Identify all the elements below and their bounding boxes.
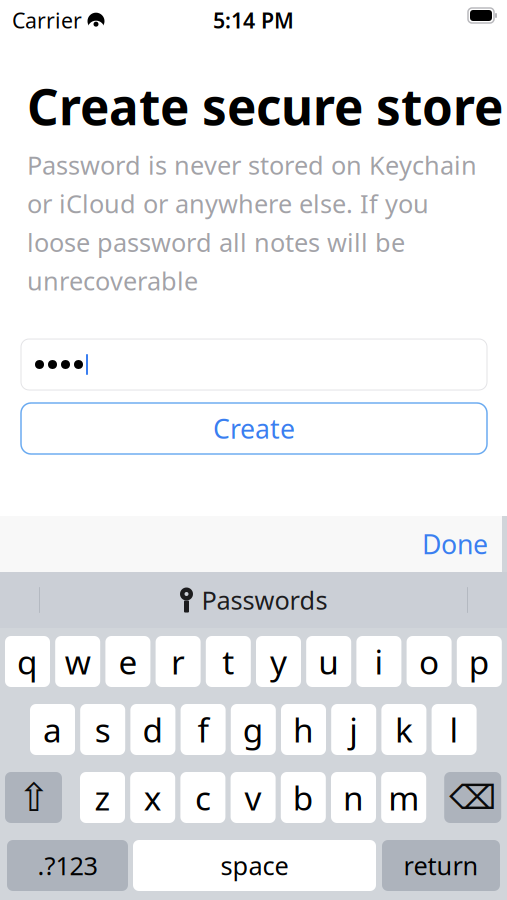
- button[interactable]: j: [331, 704, 376, 755]
- button[interactable]: h: [281, 704, 326, 755]
- button[interactable]: e: [105, 636, 150, 687]
- staticText: q: [17, 639, 38, 684]
- staticText: 5:14 PM: [213, 6, 294, 34]
- staticText: Passwords: [201, 583, 327, 617]
- staticText: Password is never stored on Keychain or …: [27, 148, 477, 298]
- button[interactable]: t: [206, 636, 251, 687]
- button[interactable]: k: [381, 704, 426, 755]
- button[interactable]: y: [256, 636, 301, 687]
- button[interactable]: x: [130, 772, 175, 823]
- button[interactable]: q: [5, 636, 50, 687]
- button[interactable]: i: [356, 636, 401, 687]
- staticText: w: [65, 639, 91, 684]
- button[interactable]: c: [180, 772, 225, 823]
- button[interactable]: .?123: [7, 840, 128, 891]
- button[interactable]: Done: [408, 514, 502, 574]
- staticText: k: [395, 707, 413, 752]
- button[interactable]: space: [133, 840, 376, 891]
- staticText: z: [94, 775, 110, 820]
- staticText: ⌫: [449, 779, 496, 816]
- staticText: ⇧: [17, 776, 49, 819]
- staticText: m: [388, 775, 419, 820]
- button[interactable]: Passwords: [169, 577, 337, 623]
- staticText: y: [270, 639, 287, 684]
- button[interactable]: z: [80, 772, 125, 823]
- staticText: n: [343, 775, 364, 820]
- staticText: Carrier: [12, 6, 82, 34]
- staticText: p: [469, 639, 490, 684]
- button[interactable]: p: [457, 636, 502, 687]
- button[interactable]: d: [130, 704, 175, 755]
- staticText: Create secure store: [27, 73, 503, 139]
- button[interactable]: o: [407, 636, 452, 687]
- staticText: return: [403, 849, 478, 882]
- staticText: o: [419, 639, 439, 684]
- staticText: Create: [213, 411, 295, 446]
- button[interactable]: v: [231, 772, 276, 823]
- staticText: x: [144, 775, 162, 820]
- button[interactable]: Delete: [444, 772, 501, 823]
- staticText: u: [318, 639, 339, 684]
- staticText: d: [142, 707, 163, 752]
- staticText: Done: [422, 526, 488, 562]
- staticText: c: [195, 775, 211, 820]
- staticText: e: [118, 639, 137, 684]
- staticText: .?123: [37, 849, 97, 882]
- staticText: i: [374, 639, 383, 684]
- staticText: s: [95, 707, 111, 752]
- staticText: l: [450, 707, 459, 752]
- button[interactable]: Shift: [5, 772, 62, 823]
- button[interactable]: f: [181, 704, 226, 755]
- button[interactable]: s: [80, 704, 125, 755]
- button[interactable]: r: [156, 636, 201, 687]
- button[interactable]: l: [432, 704, 477, 755]
- button[interactable]: Create: [21, 403, 487, 454]
- button[interactable]: a: [30, 704, 75, 755]
- button[interactable]: u: [306, 636, 351, 687]
- staticText: a: [43, 707, 62, 752]
- button[interactable]: b: [281, 772, 326, 823]
- staticText: f: [198, 707, 209, 752]
- button[interactable]: g: [231, 704, 276, 755]
- staticText: r: [171, 639, 185, 684]
- button[interactable]: w: [55, 636, 100, 687]
- staticText: t: [222, 639, 234, 684]
- button[interactable]: return: [382, 840, 500, 891]
- staticText: b: [293, 775, 314, 820]
- staticText: space: [220, 849, 288, 882]
- button[interactable]: m: [381, 772, 426, 823]
- staticText: v: [245, 775, 262, 820]
- staticText: g: [243, 707, 264, 752]
- staticText: h: [293, 707, 314, 752]
- staticText: j: [349, 707, 358, 752]
- button[interactable]: n: [331, 772, 376, 823]
